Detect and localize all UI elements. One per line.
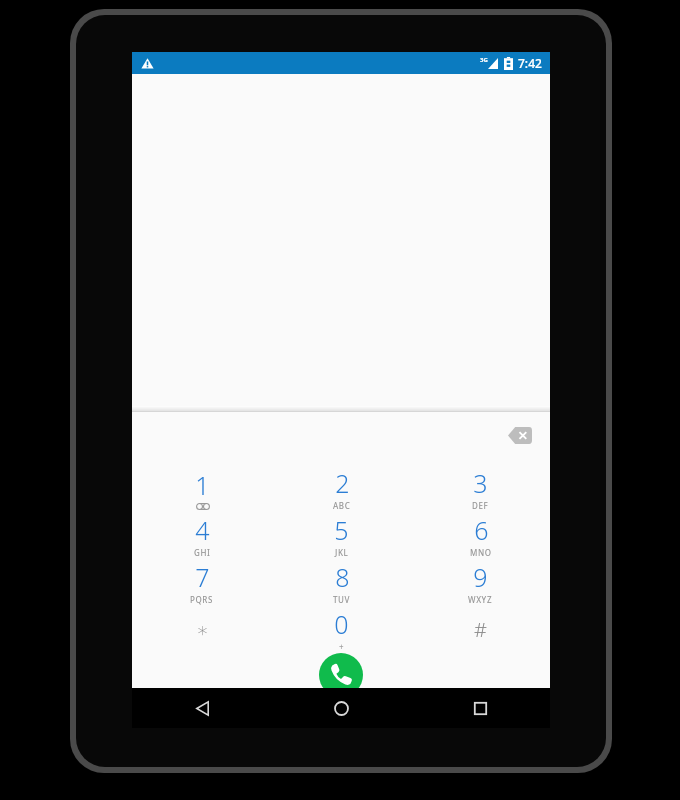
button[interactable]: Recent apps [411, 688, 550, 728]
staticText: JKL [335, 547, 349, 558]
staticText: 6 [474, 513, 489, 547]
staticText: 8 [335, 560, 350, 594]
staticText: WXYZ [468, 594, 493, 605]
button[interactable]: ∗ [132, 606, 272, 653]
staticText: DEF [472, 500, 489, 511]
button[interactable]: 9 [411, 559, 550, 606]
staticText: 3 [473, 466, 488, 500]
button[interactable]: 8 [272, 559, 411, 606]
button[interactable]: Home [272, 688, 411, 728]
staticText: 5 [334, 513, 349, 547]
staticText: 3G [480, 56, 488, 64]
staticText: # [474, 616, 487, 643]
staticText: PQRS [190, 594, 214, 605]
button[interactable]: 0 [272, 606, 411, 653]
button[interactable]: 6 [411, 512, 550, 559]
button[interactable]: 1 [132, 465, 272, 512]
staticText: + [339, 641, 344, 652]
staticText: 9 [473, 560, 488, 594]
button[interactable]: 5 [272, 512, 411, 559]
button[interactable]: 4 [132, 512, 272, 559]
button[interactable]: Back [132, 688, 272, 728]
button[interactable]: 2 [272, 465, 411, 512]
staticText: ABC [333, 500, 351, 511]
button[interactable]: # [411, 606, 550, 653]
button[interactable]: 7 [132, 559, 272, 606]
staticText: 1 [195, 468, 210, 502]
staticText: TUV [333, 594, 351, 605]
button[interactable]: Call [319, 653, 363, 697]
staticText: 2 [335, 466, 350, 500]
staticText: GHI [194, 547, 211, 558]
staticText: ∗ [196, 618, 209, 641]
staticText: MNO [470, 547, 492, 558]
button[interactable]: 3 [411, 465, 550, 512]
staticText: 7:42 [518, 55, 542, 71]
staticText: 0 [334, 607, 349, 641]
button[interactable]: Backspace [498, 413, 542, 457]
staticText: 4 [195, 513, 210, 547]
staticText: 7 [195, 560, 210, 594]
